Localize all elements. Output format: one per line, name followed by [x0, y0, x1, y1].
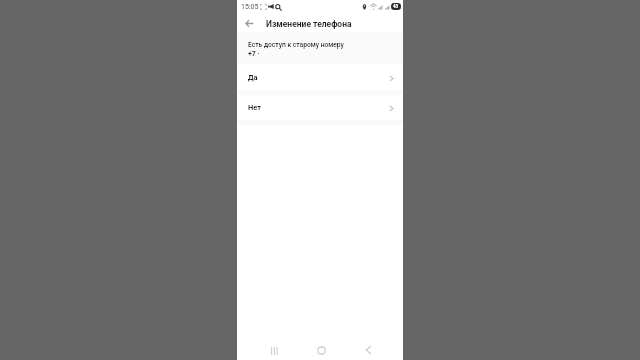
staticText: Есть доступ к старому номеру [248, 41, 344, 49]
button[interactable]: Главный экран [311, 339, 331, 359]
button[interactable]: Назад [357, 340, 377, 360]
button[interactable]: Да [237, 64, 403, 90]
staticText: 43 [393, 4, 399, 9]
staticText: Да [248, 73, 258, 82]
staticText: 15:05 [241, 3, 259, 11]
staticText: Нет [248, 103, 262, 112]
button[interactable]: Нет [237, 95, 403, 120]
staticText: Изменение телефона [266, 19, 352, 29]
staticText: +7 · [248, 50, 260, 58]
button[interactable]: Назад [241, 15, 257, 31]
button[interactable]: Недавние приложения [264, 340, 284, 360]
